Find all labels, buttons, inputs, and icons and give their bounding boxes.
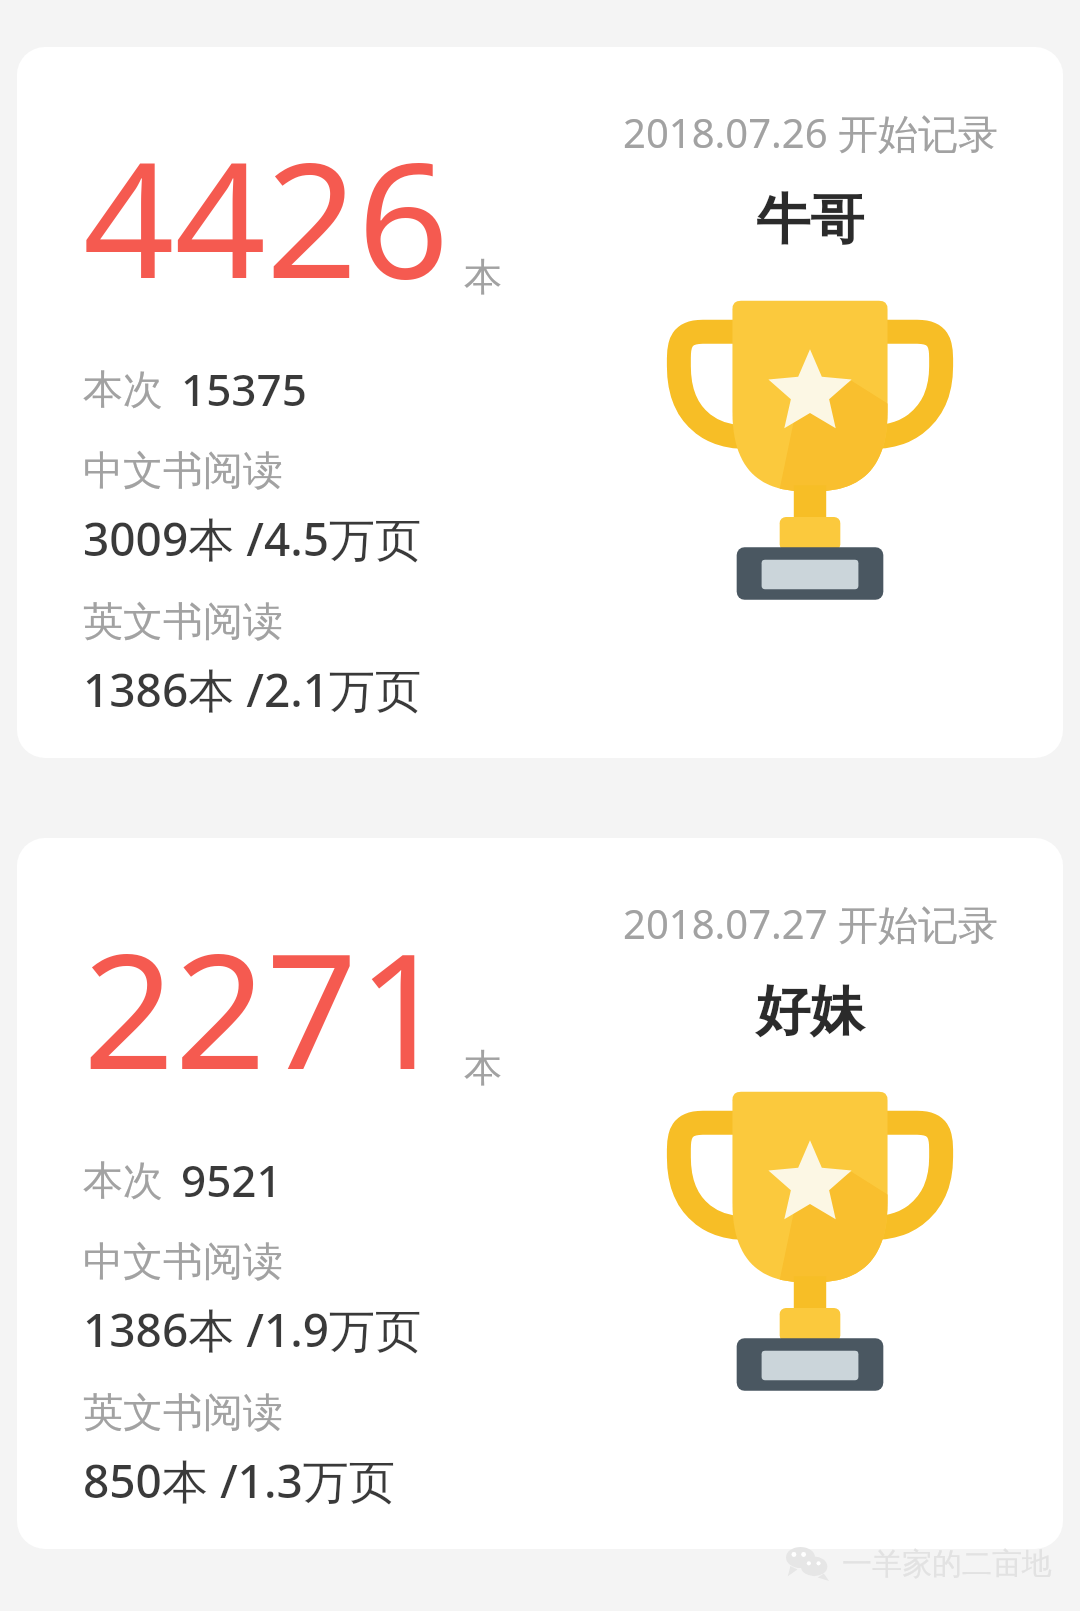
staticText: 4426 <box>83 107 450 325</box>
staticText: 一羊家的二亩地 <box>842 1545 1052 1583</box>
staticText: 2271 <box>83 898 450 1116</box>
staticText: 2018.07.26 开始记录 <box>623 105 998 160</box>
staticText: 1386本 /2.1万页 <box>83 658 422 721</box>
staticText: 本 <box>464 253 502 301</box>
staticText: 1386本 /1.9万页 <box>83 1298 422 1361</box>
staticText: 本次 <box>83 364 163 414</box>
staticText: 英文书阅读 <box>83 596 283 646</box>
staticText: 本 <box>464 1044 502 1092</box>
staticText: 3009本 /4.5万页 <box>83 507 422 570</box>
staticText: 2018.07.27 开始记录 <box>623 896 998 951</box>
button[interactable]: 4426 <box>17 47 1063 758</box>
other: Trophy <box>669 1087 951 1405</box>
staticText: 本次 <box>83 1155 163 1205</box>
button[interactable]: 2271 <box>17 838 1063 1549</box>
other: WeChat watermark <box>786 1547 830 1581</box>
staticText: 9521 <box>181 1150 282 1210</box>
other: Trophy <box>669 296 951 614</box>
staticText: 15375 <box>181 359 307 419</box>
staticText: 中文书阅读 <box>83 445 283 495</box>
staticText: 850本 /1.3万页 <box>83 1449 395 1512</box>
staticText: 中文书阅读 <box>83 1236 283 1286</box>
staticText: 好妹 <box>756 977 864 1045</box>
staticText: 牛哥 <box>756 186 864 254</box>
staticText: 英文书阅读 <box>83 1387 283 1437</box>
